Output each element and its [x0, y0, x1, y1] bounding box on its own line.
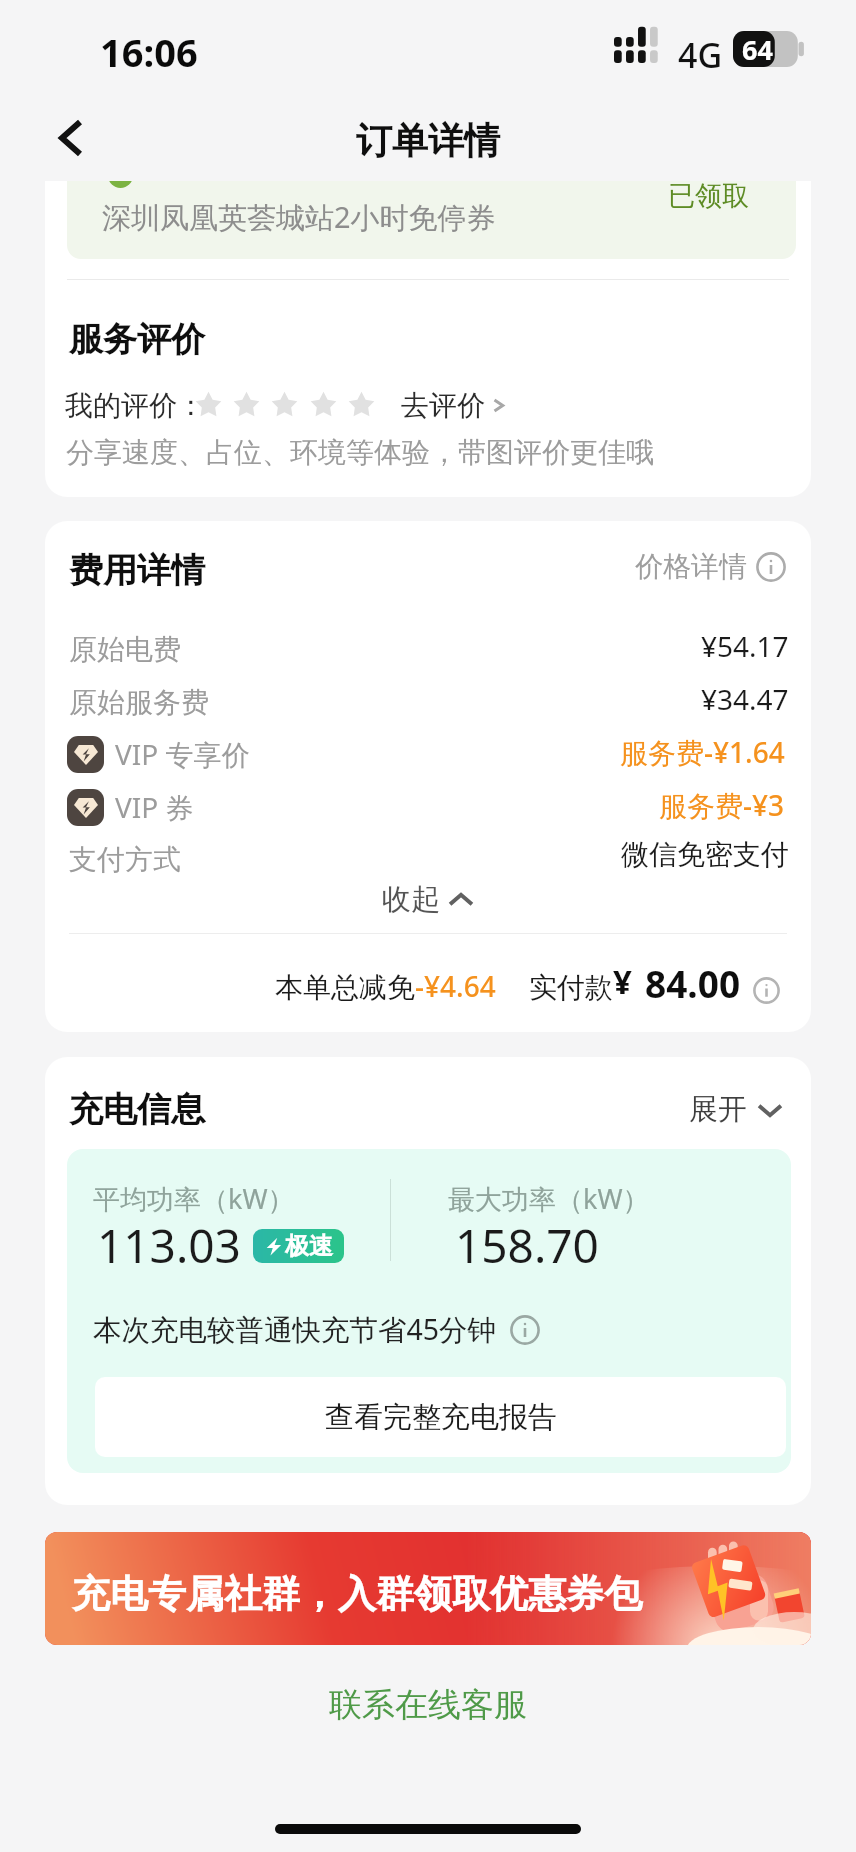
staticText: ¥: [613, 959, 632, 1004]
staticText: 实付款: [529, 970, 613, 1005]
staticText: ¥54.17: [701, 627, 789, 665]
button[interactable]: 查看完整充电报告: [95, 1377, 786, 1457]
button[interactable]: Back: [38, 104, 104, 172]
staticText: 原始服务费: [69, 685, 209, 720]
staticText: 113.03: [97, 1214, 241, 1277]
staticText: 订单详情: [356, 118, 500, 163]
staticText: 充电专属社群，入群领取优惠券包: [72, 1570, 642, 1618]
staticText: 4G: [678, 32, 723, 78]
staticText: 64: [742, 31, 773, 67]
button[interactable]: 价格详情: [635, 549, 786, 584]
staticText: 联系在线客服: [329, 1684, 527, 1726]
staticText: 16:06: [100, 26, 198, 78]
staticText: 服务评价: [69, 318, 205, 361]
button[interactable]: 联系在线客服: [305, 1674, 551, 1736]
staticText: 84.00: [645, 958, 741, 1008]
staticText: 查看完整充电报告: [325, 1399, 557, 1436]
staticText: 去评价: [401, 388, 485, 423]
staticText: 费用详情: [69, 549, 205, 592]
staticText: 支付方式: [69, 842, 181, 877]
staticText: 158.70: [455, 1214, 599, 1277]
button[interactable]: 深圳凤凰英荟城站2小时免停券: [67, 181, 796, 259]
staticText: ¥34.47: [701, 680, 789, 718]
staticText: 原始电费: [69, 632, 181, 667]
staticText: 最大功率（kW）: [448, 1180, 650, 1217]
staticText: 深圳凤凰英荟城站2小时免停券: [102, 197, 496, 237]
staticText: 我的评价：: [65, 388, 205, 423]
staticText: 价格详情: [635, 549, 747, 584]
staticText: 展开: [689, 1091, 747, 1128]
staticText: -¥4.64: [415, 967, 496, 1005]
staticText: 分享速度、占位、环境等体验，带图评价更佳哦: [66, 435, 654, 470]
staticText: 收起: [382, 881, 440, 918]
staticText: 已领取: [668, 181, 749, 213]
staticText: VIP 专享价: [115, 735, 250, 773]
staticText: 本单总减免: [275, 970, 415, 1005]
staticText: 充电信息: [69, 1088, 205, 1131]
button[interactable]: 收起: [45, 881, 811, 918]
staticText: 服务费-¥1.64: [620, 733, 785, 771]
staticText: 极速: [285, 1231, 333, 1261]
staticText: 本次充电较普通快充节省45分钟: [93, 1310, 497, 1349]
staticText: 微信免密支付: [621, 837, 789, 872]
button[interactable]: 充电专属社群，入群领取优惠券包: [45, 1532, 811, 1645]
staticText: 服务费-¥3: [659, 786, 785, 824]
staticText: VIP 券: [115, 788, 194, 826]
button[interactable]: 展开: [689, 1091, 783, 1128]
staticText: 平均功率（kW）: [93, 1180, 295, 1217]
button[interactable]: 我的评价：: [65, 388, 505, 423]
